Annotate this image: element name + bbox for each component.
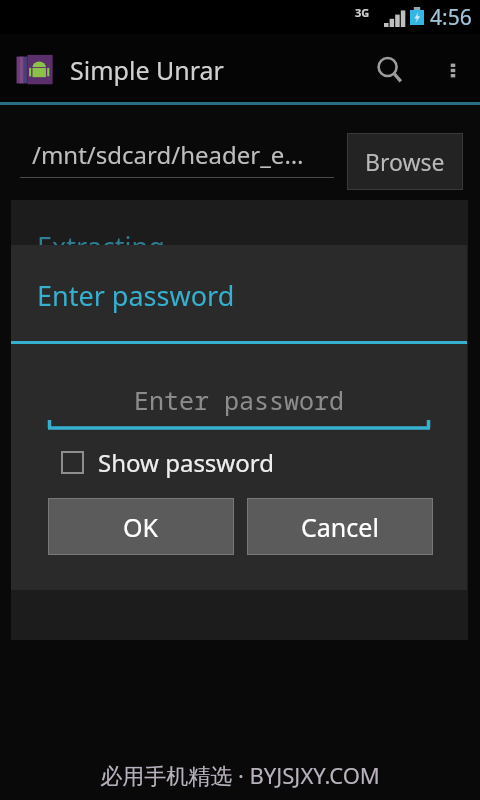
staticText: Enter password <box>37 277 235 314</box>
staticText: Cancel <box>301 510 379 544</box>
button[interactable]: Browse <box>347 133 463 190</box>
button[interactable]: Cancel <box>247 498 433 555</box>
button[interactable]: Show password <box>61 441 274 483</box>
staticText: Show password <box>98 446 274 479</box>
staticText: Browse <box>365 146 445 177</box>
staticText: 4:56 <box>430 3 472 32</box>
staticText: Enter password <box>48 383 430 417</box>
button[interactable]: /mnt/sdcard/header_e… <box>20 130 334 178</box>
button[interactable]: Enter password <box>48 383 430 431</box>
button[interactable]: OK <box>48 498 234 555</box>
button[interactable]: More options <box>426 34 480 105</box>
staticText: Simple Unrar <box>70 53 224 87</box>
staticText: 3G <box>355 5 370 20</box>
staticText: 必用手机精选 · BYJSJXY.COM <box>0 760 480 790</box>
staticText: Extracting <box>37 228 165 265</box>
staticText: OK <box>123 510 159 544</box>
button[interactable]: Search <box>354 34 426 105</box>
staticText: /mnt/sdcard/header_e… <box>32 138 304 171</box>
